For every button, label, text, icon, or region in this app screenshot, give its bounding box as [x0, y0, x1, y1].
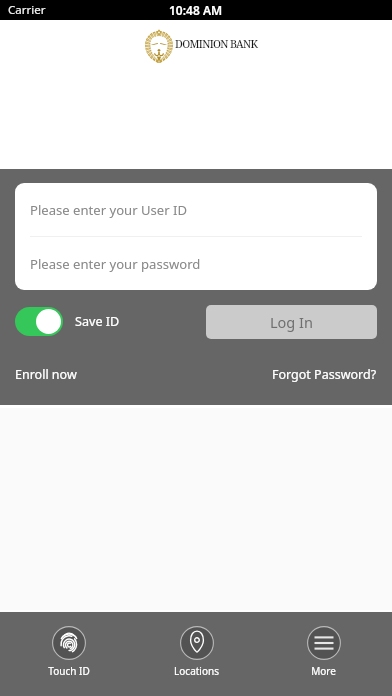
button[interactable]: Please enter your password — [15, 237, 377, 290]
button[interactable]: Log In — [206, 305, 377, 339]
button[interactable]: Please enter your User ID — [15, 183, 377, 236]
button[interactable]: Touch ID — [5, 612, 133, 696]
staticText: Log In — [270, 312, 313, 332]
button[interactable]: Save ID — [15, 307, 120, 336]
button[interactable]: Locations — [133, 612, 260, 696]
button[interactable]: Forgot Password? — [272, 366, 377, 383]
staticText: DOMINION BANK — [175, 37, 258, 51]
button[interactable]: Enroll now — [15, 366, 77, 383]
staticText: Save ID — [75, 313, 120, 330]
staticText: Touch ID — [48, 664, 90, 678]
button[interactable]: More — [260, 612, 387, 696]
staticText: More — [311, 664, 336, 678]
staticText: 10:48 AM — [169, 2, 223, 18]
staticText: Locations — [174, 664, 219, 678]
staticText: Please enter your User ID — [30, 201, 188, 219]
staticText: Carrier — [8, 2, 46, 18]
staticText: Please enter your password — [30, 255, 201, 273]
